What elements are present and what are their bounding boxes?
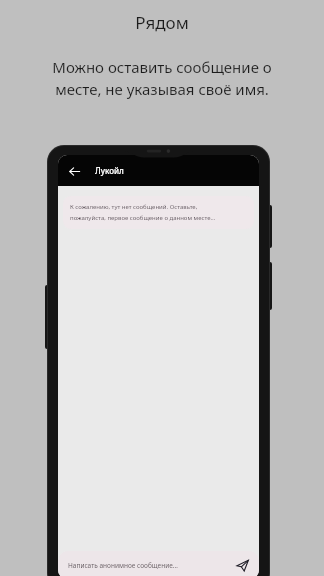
staticText: К сожалению, тут нет сообщений. Оставьте… [70,203,216,222]
staticText: Написать анонимное сообщение… [68,561,234,570]
button[interactable]: К сожалению, тут нет сообщений. Оставьте… [63,196,254,229]
button[interactable]: Написать анонимное сообщение… [58,551,259,576]
staticText: Можно оставить сообщение о месте, не ука… [52,57,272,100]
button[interactable]: Send [234,557,250,573]
staticText: Лукойл [95,165,124,176]
staticText: Рядом [135,11,189,34]
button[interactable]: Back [64,161,84,181]
